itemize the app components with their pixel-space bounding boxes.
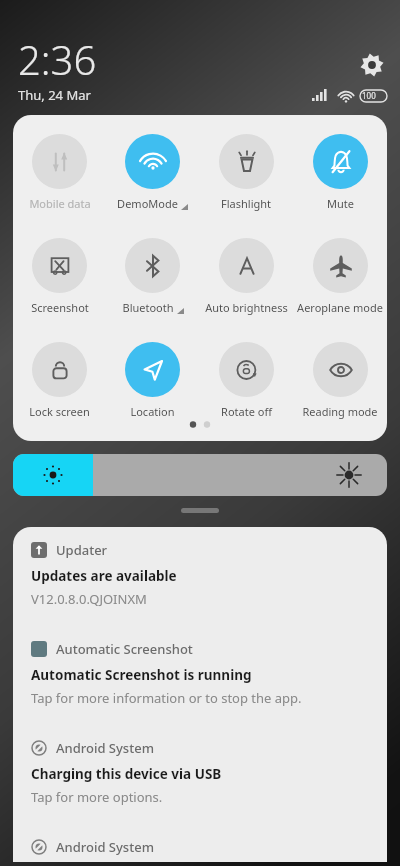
staticText: Screenshot xyxy=(31,300,89,315)
button[interactable]: Reading mode xyxy=(293,340,387,421)
staticText: Updater xyxy=(56,541,108,559)
staticText: Lock screen xyxy=(29,404,90,419)
staticText: Android System xyxy=(56,838,154,856)
button[interactable]: Aeroplane mode xyxy=(293,236,387,317)
button[interactable]: Mobile data xyxy=(13,132,106,213)
button[interactable]: Bluetooth xyxy=(106,236,199,317)
staticText: 100 xyxy=(362,90,376,101)
button[interactable]: Android System xyxy=(13,725,387,824)
staticText: 2:36 xyxy=(18,32,97,86)
button[interactable]: Automatic Screenshot xyxy=(13,626,387,725)
button[interactable]: Auto brightness xyxy=(199,236,293,317)
staticText: Automatic Screenshot xyxy=(56,640,193,658)
staticText: Thu, 24 Mar xyxy=(18,86,91,104)
staticText: Tap for more information or to stop the … xyxy=(31,689,302,707)
button[interactable]: Flashlight xyxy=(199,132,293,213)
staticText: Mute xyxy=(327,196,354,211)
staticText: DemoMode xyxy=(117,196,178,211)
staticText: Automatic Screenshot is running xyxy=(31,666,252,684)
staticText: Reading mode xyxy=(302,404,378,419)
staticText: Flashlight xyxy=(221,196,271,211)
button[interactable]: Android System xyxy=(13,824,387,862)
staticText: Rotate off xyxy=(221,404,272,419)
button[interactable]: Screenshot xyxy=(13,236,106,317)
staticText: Android System xyxy=(56,739,154,757)
staticText: Tap for more options. xyxy=(31,788,163,806)
staticText: Aeroplane mode xyxy=(297,300,383,315)
button[interactable]: Brightness xyxy=(13,454,387,496)
button[interactable]: DemoMode xyxy=(106,132,199,213)
button[interactable]: Lock screen xyxy=(13,340,106,421)
staticText: Updates are available xyxy=(31,567,177,585)
button[interactable]: Settings xyxy=(356,49,388,81)
button[interactable]: Mute xyxy=(293,132,387,213)
button[interactable]: Rotate off xyxy=(199,340,293,421)
staticText: Auto brightness xyxy=(205,300,288,315)
staticText: Charging this device via USB xyxy=(31,765,222,783)
staticText: V12.0.8.0.QJOINXM xyxy=(31,590,147,608)
staticText: Mobile data xyxy=(29,196,91,211)
staticText: Bluetooth xyxy=(122,300,174,315)
button[interactable]: Updater xyxy=(13,527,387,626)
staticText: Location xyxy=(130,404,175,419)
button[interactable]: Location xyxy=(106,340,199,421)
